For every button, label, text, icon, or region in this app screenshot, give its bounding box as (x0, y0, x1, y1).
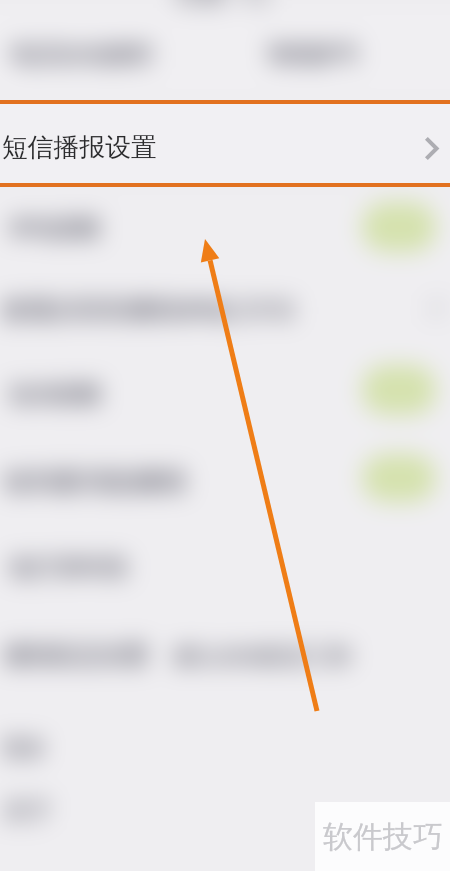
staticText: 已开启 (228, 297, 294, 325)
staticText: 默认自动延迟三秒 (175, 643, 351, 671)
staticText: 智能拨号 (267, 40, 359, 69)
button[interactable] (0, 611, 450, 699)
button[interactable]: 短信播报设置 (0, 104, 450, 183)
button[interactable] (0, 525, 450, 611)
button[interactable] (0, 4, 450, 100)
other: Open (424, 137, 439, 160)
button[interactable] (0, 699, 450, 775)
staticText: 关于 (3, 797, 51, 827)
staticText: 播报延迟设置 (4, 641, 148, 671)
staticText: 来电提醒 (8, 214, 100, 243)
button[interactable] (0, 437, 450, 525)
staticText: 电话自动接听 (10, 40, 154, 70)
button[interactable] (0, 775, 450, 851)
staticText: 短信播报设置 (2, 131, 157, 164)
staticText: 短信提醒 (9, 380, 101, 409)
button[interactable] (0, 187, 450, 267)
staticText: 免打扰时段 (8, 553, 128, 583)
button[interactable] (0, 267, 450, 351)
staticText: 软件技巧 (323, 818, 443, 856)
staticText: 收到新消息播报 (4, 466, 186, 499)
staticText: 更多 (2, 735, 46, 763)
staticText: 接通后语音播报来电 (2, 295, 227, 326)
button[interactable] (0, 351, 450, 437)
staticText: 设置中心 (175, 0, 271, 10)
